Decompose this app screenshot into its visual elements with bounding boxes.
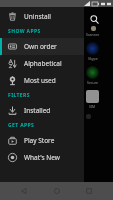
button[interactable]: Skype — [86, 42, 99, 61]
button[interactable]: Uninstall — [0, 8, 84, 25]
button[interactable]: Own order — [0, 38, 84, 55]
button[interactable]: Most used — [0, 72, 84, 89]
staticText: Alphabetical — [24, 59, 62, 68]
button[interactable]: Scanner — [86, 26, 100, 37]
button[interactable]: Search — [83, 8, 105, 30]
staticText: Own order — [24, 42, 57, 51]
button[interactable]: Installed — [0, 102, 84, 119]
button[interactable]: Secure — [86, 66, 99, 85]
button[interactable]: What's New — [0, 149, 84, 166]
button[interactable]: Play Store — [0, 132, 84, 149]
staticText: Play Store — [24, 136, 55, 145]
staticText: Installed — [24, 106, 51, 115]
staticText: What's New — [24, 153, 60, 162]
staticText: SHOW APPS — [8, 28, 41, 35]
button[interactable] — [86, 114, 91, 119]
staticText: Scanner — [86, 32, 100, 37]
staticText: Skype — [88, 56, 98, 61]
staticText: Secure — [87, 80, 99, 85]
staticText: Most used — [24, 76, 56, 85]
staticText: FILTERS — [8, 92, 30, 99]
button[interactable]: Alphabetical — [0, 55, 84, 72]
staticText: SIM — [89, 104, 96, 109]
staticText: GET APPS — [8, 122, 35, 129]
button[interactable]: SIM — [86, 90, 99, 109]
staticText: Uninstall — [24, 12, 51, 21]
button[interactable]: Recents — [80, 182, 98, 200]
